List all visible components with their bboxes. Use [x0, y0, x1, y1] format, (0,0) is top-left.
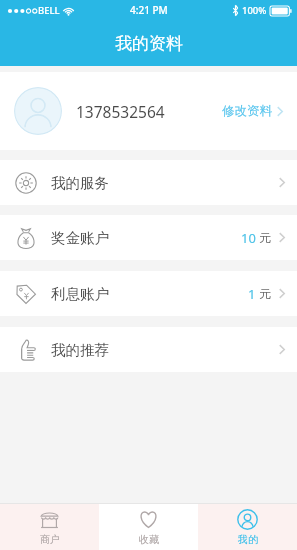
staticText: 元: [259, 286, 271, 301]
staticText: 我的资料: [115, 33, 183, 54]
staticText: 奖金账户: [51, 229, 109, 247]
button[interactable]: Favorites: [99, 504, 198, 550]
staticText: 4:21 PM: [130, 3, 168, 17]
staticText: BELL: [38, 4, 60, 17]
staticText: 商户: [40, 533, 60, 546]
staticText: 1378532564: [76, 101, 165, 122]
button[interactable]: 1378532564: [0, 72, 297, 150]
staticText: 100%: [242, 4, 267, 17]
staticText: 收藏: [139, 533, 159, 546]
button[interactable]: 奖金账户: [0, 215, 297, 260]
staticText: 我的服务: [51, 174, 109, 192]
button[interactable]: 我的推荐: [0, 327, 297, 372]
staticText: 我的: [238, 533, 258, 546]
button[interactable]: 我的服务: [0, 160, 297, 205]
staticText: 1: [248, 285, 256, 303]
button[interactable]: 利息账户: [0, 271, 297, 316]
button[interactable]: Merchants: [0, 504, 99, 550]
staticText: 我的推荐: [51, 341, 109, 359]
staticText: 利息账户: [51, 285, 109, 303]
staticText: 修改资料: [222, 103, 272, 119]
staticText: 元: [259, 230, 271, 245]
button[interactable]: Mine: [198, 504, 297, 550]
staticText: 10: [241, 229, 256, 247]
